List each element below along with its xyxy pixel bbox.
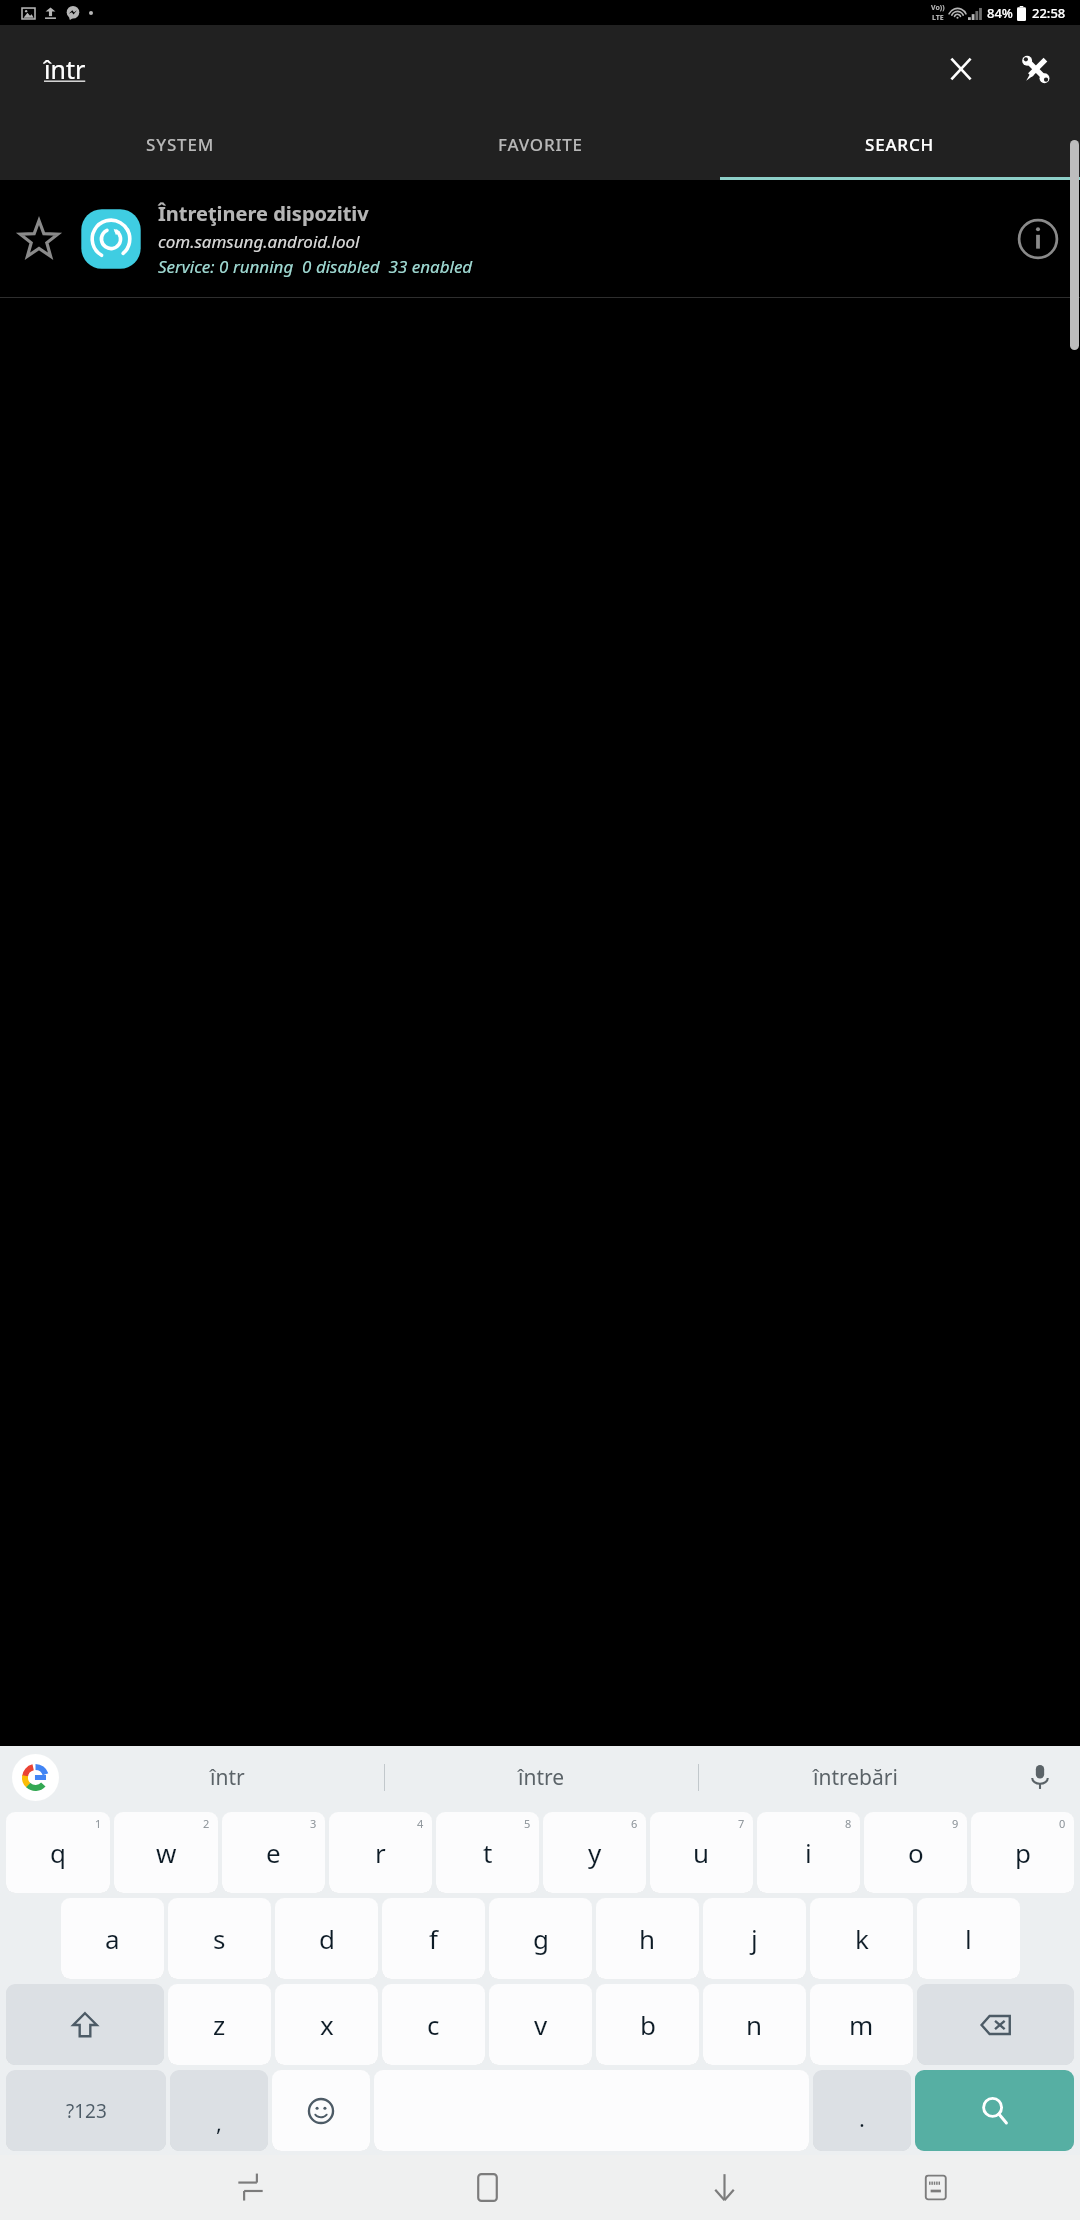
staticText: v — [534, 2007, 548, 2042]
staticText: q — [50, 1835, 66, 1870]
button[interactable]: Search — [915, 2070, 1074, 2151]
staticText: 3 — [310, 1816, 317, 1831]
button[interactable]: m — [810, 1984, 913, 2065]
button[interactable]: Google — [12, 1754, 59, 1801]
button[interactable]: 4 — [329, 1812, 432, 1893]
staticText: a — [105, 1921, 120, 1956]
staticText: 1 — [95, 1816, 102, 1831]
button[interactable]: FAVORITE — [360, 112, 720, 177]
button[interactable]: n — [703, 1984, 806, 2065]
staticText: x — [320, 2007, 334, 2042]
staticText: l — [965, 1921, 972, 1956]
button[interactable]: l — [917, 1898, 1020, 1979]
staticText: SEARCH — [865, 133, 935, 156]
button[interactable]: . — [813, 2070, 911, 2151]
button[interactable]: Shift — [6, 1984, 164, 2065]
staticText: 2 — [203, 1816, 210, 1831]
staticText: o — [908, 1835, 924, 1870]
button[interactable]: d — [275, 1898, 378, 1979]
staticText: 5 — [524, 1816, 531, 1831]
button[interactable]: 5 — [436, 1812, 539, 1893]
button[interactable]: ?123 — [6, 2070, 166, 2151]
button[interactable]: Tools — [1008, 42, 1062, 96]
staticText: LTE — [932, 13, 944, 23]
button[interactable]: 8 — [757, 1812, 860, 1893]
button[interactable]: , — [170, 2070, 268, 2151]
button[interactable]: Backspace — [917, 1984, 1074, 2065]
staticText: t — [483, 1835, 493, 1870]
staticText: între — [518, 1763, 565, 1792]
button[interactable]: 0 — [971, 1812, 1074, 1893]
button[interactable]: 1 — [6, 1812, 110, 1893]
staticText: 8 — [845, 1816, 852, 1831]
button[interactable]: j — [703, 1898, 806, 1979]
staticText: 22:58 — [1032, 4, 1066, 22]
button[interactable]: 7 — [650, 1812, 753, 1893]
button[interactable]: Voice input — [1016, 1753, 1064, 1801]
button[interactable]: 9 — [864, 1812, 967, 1893]
staticText: g — [533, 1921, 549, 1956]
button[interactable]: într — [70, 1746, 384, 1808]
staticText: d — [319, 1921, 335, 1956]
button[interactable]: Favorite — [0, 180, 1080, 297]
button[interactable]: App info — [996, 180, 1080, 297]
button[interactable]: b — [596, 1984, 699, 2065]
staticText: 7 — [738, 1816, 745, 1831]
button[interactable]: Clear search — [934, 42, 988, 96]
button[interactable]: Home — [369, 2155, 606, 2220]
button[interactable]: Favorite — [0, 180, 78, 297]
staticText: k — [855, 1921, 869, 1956]
staticText: Întreţinere dispozitiv — [158, 200, 369, 227]
button[interactable]: Recents — [132, 2155, 369, 2220]
staticText: u — [693, 1835, 710, 1870]
button[interactable]: v — [489, 1984, 592, 2065]
staticText: h — [639, 1921, 656, 1956]
staticText: com.samsung.android.lool — [158, 230, 360, 253]
staticText: m — [849, 2007, 874, 2042]
staticText: e — [266, 1835, 281, 1870]
staticText: într — [210, 1763, 245, 1792]
button[interactable]: h — [596, 1898, 699, 1979]
button[interactable]: f — [382, 1898, 485, 1979]
staticText: r — [375, 1835, 386, 1870]
staticText: FAVORITE — [498, 133, 583, 156]
staticText: s — [213, 1921, 226, 1956]
staticText: într — [44, 52, 86, 86]
staticText: ?123 — [66, 2098, 107, 2124]
button[interactable]: z — [168, 1984, 271, 2065]
staticText: n — [746, 2007, 763, 2042]
staticText: 0 — [1059, 1816, 1066, 1831]
staticText: , — [216, 2107, 222, 2137]
button[interactable]: a — [61, 1898, 164, 1979]
button[interactable]: întrebări — [699, 1746, 1012, 1808]
button[interactable]: c — [382, 1984, 485, 2065]
staticText: p — [1015, 1835, 1031, 1870]
staticText: i — [805, 1835, 812, 1870]
button[interactable]: Hide keyboard — [606, 2155, 843, 2220]
staticText: c — [427, 2007, 440, 2042]
staticText: . — [859, 2103, 865, 2133]
button[interactable]: g — [489, 1898, 592, 1979]
button[interactable]: între — [385, 1746, 698, 1808]
staticText: 84% — [987, 4, 1013, 22]
button[interactable]: SYSTEM — [0, 112, 360, 177]
staticText: Service: 0 running 0 disabled 33 enabled — [158, 255, 473, 278]
button[interactable]: 6 — [543, 1812, 646, 1893]
staticText: z — [213, 2007, 226, 2042]
button[interactable]: într — [44, 41, 194, 97]
button[interactable]: 3 — [222, 1812, 325, 1893]
staticText: y — [588, 1835, 602, 1870]
staticText: w — [156, 1835, 177, 1870]
button[interactable]: s — [168, 1898, 271, 1979]
button[interactable]: x — [275, 1984, 378, 2065]
staticText: SYSTEM — [146, 133, 215, 156]
button[interactable]: SEARCH — [720, 112, 1080, 177]
staticText: întrebări — [813, 1763, 898, 1792]
button[interactable]: Change keyboard — [843, 2155, 1028, 2220]
staticText: 6 — [631, 1816, 638, 1831]
button[interactable]: k — [810, 1898, 913, 1979]
button[interactable]: Emoji — [272, 2070, 370, 2151]
staticText: b — [640, 2007, 656, 2042]
button[interactable]: 2 — [114, 1812, 218, 1893]
